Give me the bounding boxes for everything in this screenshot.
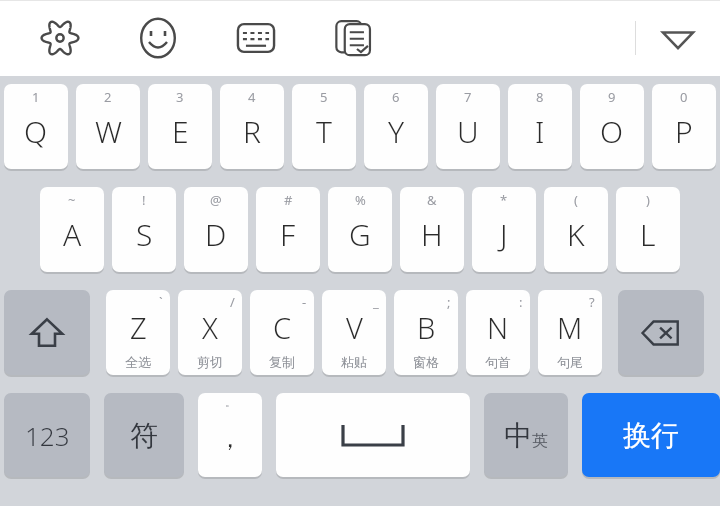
staticText: 句首 xyxy=(485,354,511,370)
staticText: % xyxy=(355,191,366,209)
staticText: 剪切 xyxy=(197,354,223,370)
button[interactable]: - xyxy=(250,290,314,375)
button[interactable]: 9 xyxy=(580,84,644,169)
staticText: 句尾 xyxy=(557,354,583,370)
staticText: ? xyxy=(589,293,595,311)
staticText: C xyxy=(273,308,292,347)
button[interactable]: Shift xyxy=(4,290,90,375)
staticText: T xyxy=(316,111,332,152)
staticText: 符 xyxy=(130,418,158,453)
staticText: 4 xyxy=(248,88,256,106)
staticText: ) xyxy=(646,191,650,209)
button[interactable]: 3 xyxy=(148,84,212,169)
staticText: 123 xyxy=(25,418,70,453)
staticText: 复制 xyxy=(269,354,295,370)
button[interactable]: % xyxy=(328,187,392,272)
staticText: E xyxy=(172,111,189,152)
staticText: 。 xyxy=(225,395,236,409)
staticText: P xyxy=(675,111,693,152)
staticText: # xyxy=(284,191,293,209)
button[interactable]: Clipboard xyxy=(324,8,384,68)
staticText: Z xyxy=(130,308,147,347)
button[interactable]: 8 xyxy=(508,84,572,169)
staticText: 3 xyxy=(176,88,184,106)
staticText: D xyxy=(205,214,227,255)
button[interactable]: Space xyxy=(276,393,470,477)
button[interactable]: 换行 xyxy=(582,393,720,477)
button[interactable]: & xyxy=(400,187,464,272)
button[interactable]: ! xyxy=(112,187,176,272)
staticText: 粘贴 xyxy=(341,354,367,370)
button[interactable]: Keyboard layout xyxy=(226,8,286,68)
button[interactable]: * xyxy=(472,187,536,272)
button[interactable]: : xyxy=(466,290,530,375)
button[interactable]: ~ xyxy=(40,187,104,272)
button[interactable]: ? xyxy=(538,290,602,375)
staticText: Y xyxy=(388,111,405,152)
button[interactable]: # xyxy=(256,187,320,272)
staticText: 1 xyxy=(32,88,40,106)
staticText: Q xyxy=(24,111,48,152)
staticText: 0 xyxy=(680,88,688,106)
staticText: ; xyxy=(447,293,451,311)
staticText: I xyxy=(535,111,545,152)
staticText: S xyxy=(136,214,153,255)
staticText: 中 xyxy=(504,418,532,453)
button[interactable]: 7 xyxy=(436,84,500,169)
button[interactable]: Settings xyxy=(30,8,90,68)
button[interactable]: Emoji xyxy=(128,8,188,68)
button[interactable]: 1 xyxy=(4,84,68,169)
staticText: J xyxy=(500,214,508,255)
staticText: N xyxy=(487,308,509,347)
button[interactable]: ` xyxy=(106,290,170,375)
staticText: 8 xyxy=(536,88,544,106)
staticText: @ xyxy=(210,191,222,209)
button[interactable]: 2 xyxy=(76,84,140,169)
button[interactable]: Backspace xyxy=(618,290,704,375)
button[interactable]: / xyxy=(178,290,242,375)
staticText: 2 xyxy=(104,88,112,106)
staticText: _ xyxy=(373,293,379,311)
staticText: K xyxy=(567,214,585,255)
button[interactable]: 。 xyxy=(198,393,262,477)
button[interactable]: ) xyxy=(616,187,680,272)
staticText: 7 xyxy=(464,88,472,106)
staticText: 英 xyxy=(532,431,548,451)
staticText: ~ xyxy=(68,191,76,209)
staticText: / xyxy=(230,293,235,311)
staticText: H xyxy=(421,214,443,255)
button[interactable]: 6 xyxy=(364,84,428,169)
staticText: ` xyxy=(159,293,163,311)
staticText: L xyxy=(640,214,656,255)
staticText: : xyxy=(519,293,523,311)
button[interactable]: 5 xyxy=(292,84,356,169)
button[interactable]: _ xyxy=(322,290,386,375)
staticText: X xyxy=(202,308,218,347)
staticText: W xyxy=(95,111,122,152)
button[interactable]: @ xyxy=(184,187,248,272)
button[interactable]: 0 xyxy=(652,84,716,169)
staticText: ， xyxy=(218,424,242,454)
staticText: 全选 xyxy=(125,354,151,370)
staticText: ( xyxy=(574,191,578,209)
staticText: A xyxy=(63,214,82,255)
staticText: 换行 xyxy=(623,418,679,453)
button[interactable]: 123 xyxy=(4,393,90,477)
button[interactable]: 中 xyxy=(484,393,568,477)
staticText: U xyxy=(457,111,479,152)
staticText: G xyxy=(349,214,371,255)
button[interactable]: Hide keyboard xyxy=(636,0,720,76)
staticText: & xyxy=(427,191,437,209)
staticText: V xyxy=(346,308,363,347)
button[interactable]: 4 xyxy=(220,84,284,169)
staticText: O xyxy=(600,111,624,152)
staticText: 5 xyxy=(320,88,328,106)
staticText: R xyxy=(243,111,261,152)
button[interactable]: ; xyxy=(394,290,458,375)
button[interactable]: ( xyxy=(544,187,608,272)
button[interactable]: 符 xyxy=(104,393,184,477)
staticText: 6 xyxy=(392,88,400,106)
staticText: M xyxy=(557,308,583,347)
staticText: B xyxy=(417,308,436,347)
staticText: * xyxy=(500,191,508,209)
